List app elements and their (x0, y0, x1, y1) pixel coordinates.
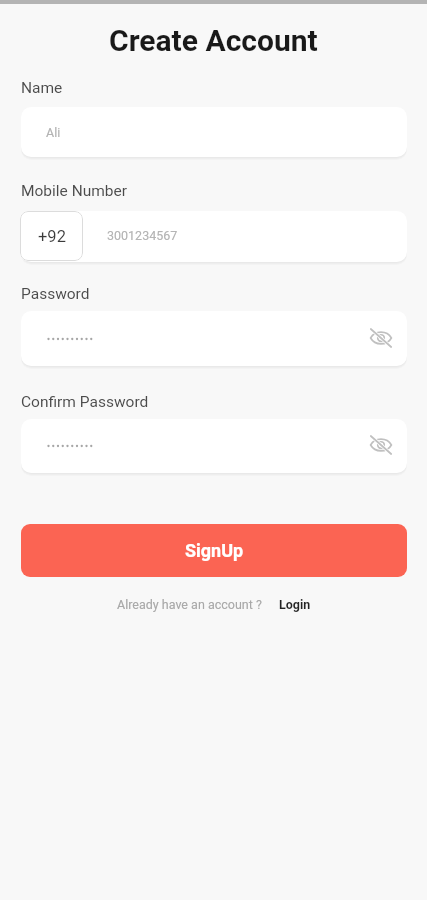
staticText: Ali (46, 125, 61, 140)
staticText: +92 (38, 227, 66, 246)
staticText: Create Account (109, 23, 318, 58)
staticText: SignUp (185, 540, 244, 561)
staticText: 3001234567 (107, 228, 178, 243)
button[interactable]: Name field (21, 107, 407, 157)
staticText: Already have an account ? (117, 597, 262, 612)
staticText: Login (279, 597, 311, 612)
button[interactable]: Password field (21, 311, 407, 366)
button[interactable]: Confirm password field (21, 419, 407, 473)
button[interactable]: +92 (20, 211, 83, 261)
staticText: Mobile Number (21, 182, 128, 200)
button[interactable]: Show password (369, 433, 393, 457)
staticText: Password (21, 285, 90, 303)
button[interactable]: Show password (369, 326, 393, 350)
staticText: Confirm Password (21, 393, 149, 411)
button[interactable]: SignUp (21, 524, 407, 577)
button[interactable]: Login (279, 597, 311, 612)
button[interactable]: Mobile number field (21, 211, 407, 262)
staticText: Name (21, 79, 63, 97)
